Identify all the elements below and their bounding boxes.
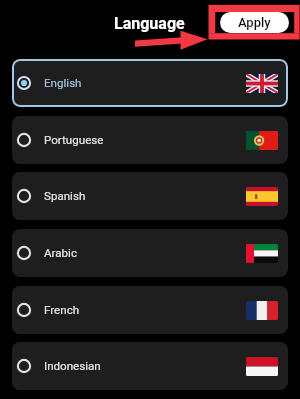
other: Not selected xyxy=(14,186,34,206)
button[interactable]: Not selected xyxy=(12,172,288,220)
staticText: Indonesian xyxy=(44,359,101,373)
staticText: English xyxy=(44,76,82,90)
other: Not selected xyxy=(14,130,34,150)
button[interactable]: Not selected xyxy=(12,229,288,277)
staticText: Arabic xyxy=(44,246,77,260)
button[interactable]: Apply xyxy=(220,12,289,33)
button[interactable]: Not selected xyxy=(12,342,288,390)
staticText: Spanish xyxy=(44,189,86,203)
staticText: French xyxy=(44,303,80,317)
staticText: Language xyxy=(114,14,185,33)
button[interactable]: Not selected xyxy=(12,286,288,334)
other: Not selected xyxy=(14,356,34,376)
staticText: Apply xyxy=(238,15,271,30)
button[interactable]: Not selected xyxy=(12,116,288,164)
other: Not selected xyxy=(14,243,34,263)
button[interactable]: Selected xyxy=(12,59,288,107)
other: Not selected xyxy=(14,300,34,320)
other: Selected xyxy=(14,73,34,93)
staticText: Portuguese xyxy=(44,133,104,147)
